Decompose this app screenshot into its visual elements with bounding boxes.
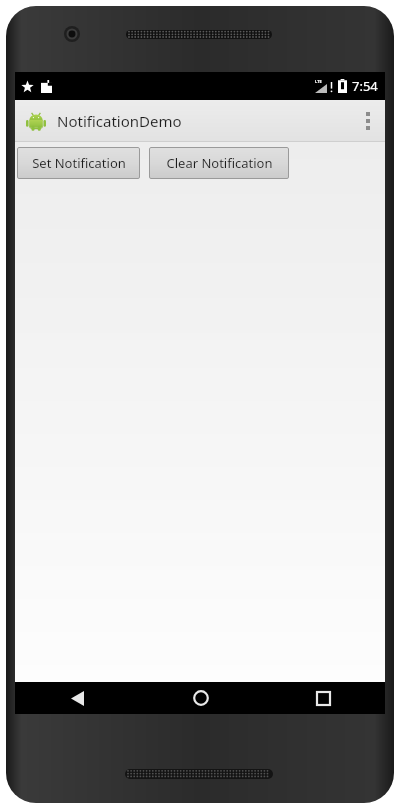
staticText: NotificationDemo [57, 111, 182, 131]
button[interactable]: Clear Notification [149, 147, 289, 179]
staticText: 7:54 [352, 77, 378, 95]
staticText: Set Notification [32, 154, 126, 172]
button[interactable]: Set Notification [17, 147, 140, 179]
button[interactable]: Home [139, 682, 262, 714]
button[interactable]: Back [15, 682, 139, 714]
button[interactable]: Recent apps [262, 682, 385, 714]
button[interactable]: More options [351, 100, 385, 142]
staticText: LTE [315, 79, 322, 84]
staticText: Clear Notification [166, 154, 273, 172]
